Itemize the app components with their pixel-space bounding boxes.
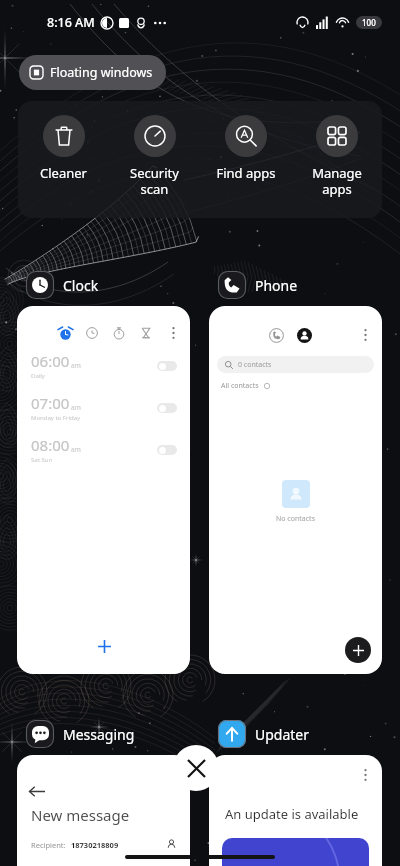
- staticText: Cleaner: [40, 164, 87, 182]
- button[interactable]: Messaging: [26, 719, 135, 749]
- staticText: 0 contacts: [238, 360, 272, 370]
- button[interactable]: More options: [359, 327, 371, 343]
- staticText: Floating windows: [50, 64, 153, 81]
- button[interactable]: Manage apps: [291, 101, 382, 218]
- staticText: Find apps: [216, 164, 276, 182]
- staticText: No contacts: [276, 514, 315, 524]
- button[interactable]: Updater: [218, 719, 310, 749]
- button[interactable]: More options: [209, 755, 382, 866]
- staticText: Daily: [31, 372, 45, 380]
- staticText: am: [71, 403, 81, 412]
- button[interactable]: Toggle alarm: [157, 403, 177, 413]
- staticText: Sat Sun: [31, 456, 53, 464]
- button[interactable]: Phone: [218, 270, 298, 300]
- button[interactable]: Close: [173, 745, 219, 791]
- button[interactable]: Floating windows: [19, 55, 166, 90]
- staticText: All contacts: [221, 381, 259, 391]
- staticText: Security scan: [130, 164, 179, 197]
- button[interactable]: Add alarm: [93, 635, 115, 657]
- staticText: Monday to Friday: [31, 414, 81, 422]
- staticText: Clock: [63, 276, 99, 295]
- other: Pick contact: [166, 839, 177, 850]
- staticText: 08:00: [31, 435, 70, 455]
- button[interactable]: 06:00: [31, 351, 177, 380]
- staticText: Recipient:: [31, 840, 66, 850]
- staticText: 100: [362, 17, 376, 28]
- staticText: am: [71, 361, 81, 370]
- staticText: 06:00: [31, 351, 70, 371]
- button[interactable]: Find apps: [200, 101, 291, 218]
- staticText: An update is available: [225, 805, 359, 823]
- button[interactable]: Clock: [26, 270, 99, 300]
- staticText: 07:00: [31, 393, 70, 413]
- button[interactable]: Toggle alarm: [157, 445, 177, 455]
- staticText: am: [71, 445, 81, 454]
- button[interactable]: Security scan: [109, 101, 200, 218]
- staticText: Manage apps: [312, 164, 362, 197]
- button[interactable]: Add contact: [345, 637, 371, 663]
- button[interactable]: Back: [29, 781, 49, 801]
- button[interactable]: Back: [17, 755, 190, 866]
- button[interactable]: Cleaner: [18, 101, 109, 218]
- staticText: New message: [31, 805, 130, 825]
- button[interactable]: More options: [209, 306, 382, 674]
- button[interactable]: More options: [167, 325, 179, 341]
- button[interactable]: 08:00: [31, 435, 177, 464]
- button[interactable]: More options: [359, 767, 371, 783]
- button[interactable]: Toggle alarm: [157, 361, 177, 371]
- staticText: Updater: [255, 725, 310, 744]
- staticText: 8:16 AM: [47, 14, 95, 31]
- staticText: Phone: [255, 276, 298, 295]
- button[interactable]: 07:00: [31, 393, 177, 422]
- button[interactable]: More options: [17, 306, 190, 674]
- button[interactable]: 0 contacts: [217, 356, 374, 373]
- staticText: 18730218809: [71, 840, 119, 850]
- staticText: Messaging: [63, 725, 135, 744]
